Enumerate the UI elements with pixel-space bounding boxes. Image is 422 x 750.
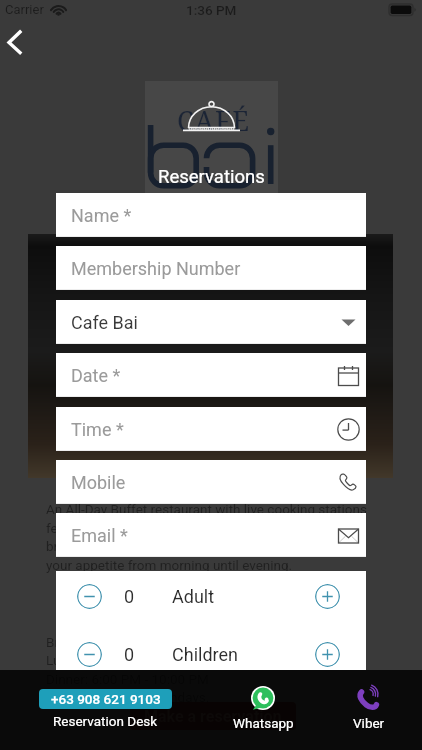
staticText: Open Mondays to Sundays. — [46, 689, 210, 705]
staticText: Children — [172, 644, 238, 665]
button[interactable]: Decrease Adult — [77, 584, 102, 609]
staticText: Adult — [172, 586, 215, 607]
staticText: Reservation Desk — [53, 713, 158, 729]
staticText: Lunch: 12:00 NN - 2:30 PM — [46, 652, 206, 668]
staticText: Email * — [71, 525, 128, 546]
button[interactable]: Whatsapp — [210, 670, 316, 750]
staticText: Whatsapp — [233, 715, 294, 731]
button[interactable]: Name * — [56, 193, 366, 237]
staticText: 0 — [124, 586, 135, 607]
staticText: Time * — [71, 419, 124, 440]
staticText: featuring local and international cuisin… — [46, 520, 359, 536]
staticText: Name * — [71, 205, 132, 226]
button[interactable]: Email * — [56, 513, 366, 557]
button[interactable]: Cafe Bai — [56, 300, 366, 344]
staticText: 1:36 PM — [186, 2, 237, 18]
button[interactable]: Mobile — [56, 460, 366, 504]
staticText: Make a reservation — [144, 707, 282, 726]
button[interactable]: Increase Children — [315, 642, 340, 667]
staticText: Mobile — [71, 472, 126, 493]
button[interactable]: Back — [0, 24, 44, 60]
button[interactable]: Time * — [56, 407, 366, 451]
staticText: 0 — [124, 644, 135, 665]
staticText: Carrier — [5, 2, 44, 17]
staticText: Date * — [71, 365, 121, 386]
button[interactable]: Increase Adult — [315, 584, 340, 609]
staticText: CAFÉ — [177, 102, 251, 139]
staticText: Membership Number — [71, 258, 241, 279]
staticText: your appetite from morning until evening… — [46, 557, 293, 573]
staticText: Cafe Bai — [71, 312, 138, 333]
button[interactable]: Viber — [316, 670, 422, 750]
staticText: bring out the flavours of the world, and… — [46, 538, 320, 554]
button[interactable]: Date * — [56, 353, 366, 397]
staticText: +63 908 621 9103 — [51, 691, 161, 707]
staticText: Breakfast: 6:00 AM - 10:30 AM — [46, 634, 229, 650]
button[interactable]: +63 908 621 9103 — [0, 670, 210, 750]
staticText: Reservations — [158, 166, 265, 188]
staticText: Viber — [353, 715, 385, 731]
button[interactable]: Membership Number — [56, 246, 366, 290]
button[interactable]: Decrease Children — [77, 642, 102, 667]
staticText: An All-Day Buffet restaurant with live c… — [46, 501, 367, 517]
